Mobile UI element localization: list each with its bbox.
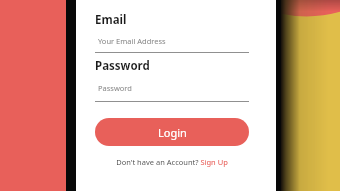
- staticText: Email: [95, 12, 127, 28]
- button[interactable]: Login: [95, 118, 249, 146]
- button[interactable]: Password: [95, 83, 249, 102]
- staticText: Your Email Address: [98, 36, 166, 46]
- staticText: Password: [95, 58, 150, 74]
- staticText: Don't have an Account? Sign Up: [116, 157, 228, 167]
- button[interactable]: Your Email Address: [95, 36, 249, 53]
- staticText: Login: [158, 125, 187, 140]
- button[interactable]: Don't have an Account? Sign Up: [95, 157, 249, 167]
- staticText: Password: [98, 83, 132, 93]
